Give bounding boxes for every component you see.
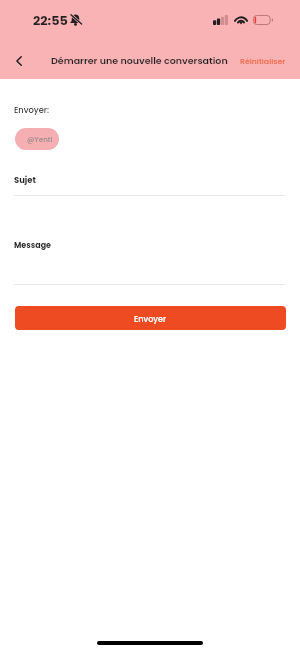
- staticText: Message: [14, 240, 51, 251]
- staticText: Envoyer: [134, 313, 167, 324]
- button[interactable]: Envoyer: [15, 306, 286, 330]
- button[interactable]: @Yentl: [15, 128, 59, 150]
- button[interactable]: Back: [5, 47, 33, 75]
- staticText: @Yentl: [27, 134, 53, 144]
- staticText: Envoyer:: [14, 104, 49, 116]
- button[interactable]: Réinitialiser: [234, 49, 292, 74]
- staticText: 22:55: [33, 12, 68, 30]
- button[interactable]: Sujet: [13, 170, 286, 197]
- button[interactable]: Message: [13, 236, 286, 286]
- staticText: Réinitialiser: [240, 56, 286, 67]
- staticText: Démarrer une nouvelle conversation: [51, 54, 228, 67]
- staticText: Sujet: [14, 174, 36, 186]
